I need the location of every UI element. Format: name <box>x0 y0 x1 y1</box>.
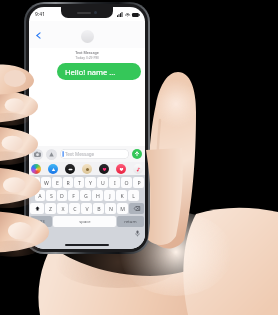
button[interactable]: App 6 <box>133 164 143 174</box>
button[interactable]: Contact <box>81 30 94 43</box>
button[interactable]: U <box>97 177 108 188</box>
button[interactable]: M <box>117 203 128 214</box>
button[interactable]: return <box>117 216 144 227</box>
staticText: J <box>109 192 111 199</box>
staticText: B <box>97 205 101 212</box>
button[interactable]: Dictate <box>133 229 142 238</box>
button[interactable]: E <box>52 177 62 188</box>
staticText: A <box>38 192 42 199</box>
staticText: U <box>101 179 105 186</box>
button[interactable]: N <box>105 203 116 214</box>
staticText: Today 3:29 PM <box>75 55 99 60</box>
button[interactable]: P <box>133 177 144 188</box>
button[interactable]: K <box>116 190 127 201</box>
staticText: F <box>72 192 75 199</box>
button[interactable]: space <box>53 216 116 227</box>
staticText: R <box>66 179 70 186</box>
button[interactable]: G <box>80 190 91 201</box>
staticText: I <box>114 179 116 186</box>
button[interactable]: S <box>46 190 56 201</box>
staticText: Hello! name ... <box>65 67 116 77</box>
staticText: Text Message <box>75 50 99 55</box>
staticText: V <box>85 205 89 212</box>
button[interactable]: Text Message <box>60 149 129 159</box>
staticText: K <box>120 192 124 199</box>
button[interactable]: Camera <box>32 149 43 160</box>
button[interactable]: App 4 <box>99 164 109 174</box>
staticText: T <box>78 179 81 186</box>
staticText: Z <box>49 205 52 212</box>
button[interactable]: O <box>121 177 132 188</box>
staticText: Q <box>33 179 38 186</box>
button[interactable]: Emoji <box>32 229 41 238</box>
staticText: L <box>132 192 135 199</box>
staticText: O <box>124 179 129 186</box>
staticText: Text Message <box>65 151 95 157</box>
button[interactable]: J <box>104 190 115 201</box>
button[interactable]: Backspace <box>129 203 144 214</box>
button[interactable]: A <box>35 190 45 201</box>
button[interactable]: App 5 <box>116 164 126 174</box>
staticText: G <box>84 192 88 199</box>
button[interactable]: Q <box>30 177 40 188</box>
staticText: 9:41 <box>35 11 45 18</box>
button[interactable]: F <box>68 190 79 201</box>
staticText: Y <box>89 179 92 186</box>
button[interactable]: App 0 <box>31 164 41 174</box>
staticText: P <box>137 179 141 186</box>
staticText: space <box>79 219 91 225</box>
staticText: D <box>60 192 64 199</box>
button[interactable]: App 2 <box>65 164 75 174</box>
button[interactable]: X <box>57 203 68 214</box>
button[interactable]: D <box>57 190 67 201</box>
staticText: W <box>44 179 49 186</box>
button[interactable]: Y <box>85 177 96 188</box>
staticText: H <box>96 192 100 199</box>
button[interactable]: T <box>74 177 84 188</box>
staticText: C <box>73 205 77 212</box>
button[interactable]: 123 <box>30 216 52 227</box>
button[interactable]: B <box>93 203 104 214</box>
button[interactable]: R <box>63 177 73 188</box>
staticText: M <box>120 205 125 212</box>
button[interactable]: Shift <box>30 203 44 214</box>
staticText: E <box>56 179 59 186</box>
button[interactable]: Hello! name ... <box>57 63 141 80</box>
button[interactable]: Apps <box>46 149 57 160</box>
staticText: X <box>61 205 65 212</box>
button[interactable]: W <box>41 177 51 188</box>
button[interactable]: Send <box>132 149 142 159</box>
button[interactable]: L <box>128 190 139 201</box>
staticText: 123 <box>37 219 45 225</box>
staticText: S <box>50 192 53 199</box>
button[interactable]: V <box>81 203 92 214</box>
button[interactable]: C <box>69 203 80 214</box>
button[interactable]: Z <box>45 203 56 214</box>
staticText: N <box>109 205 113 212</box>
button[interactable]: H <box>92 190 103 201</box>
button[interactable]: I <box>109 177 120 188</box>
button[interactable]: App 1 <box>48 164 58 174</box>
button[interactable]: App 3 <box>82 164 92 174</box>
staticText: return <box>124 219 137 225</box>
button[interactable]: Back <box>31 28 45 42</box>
